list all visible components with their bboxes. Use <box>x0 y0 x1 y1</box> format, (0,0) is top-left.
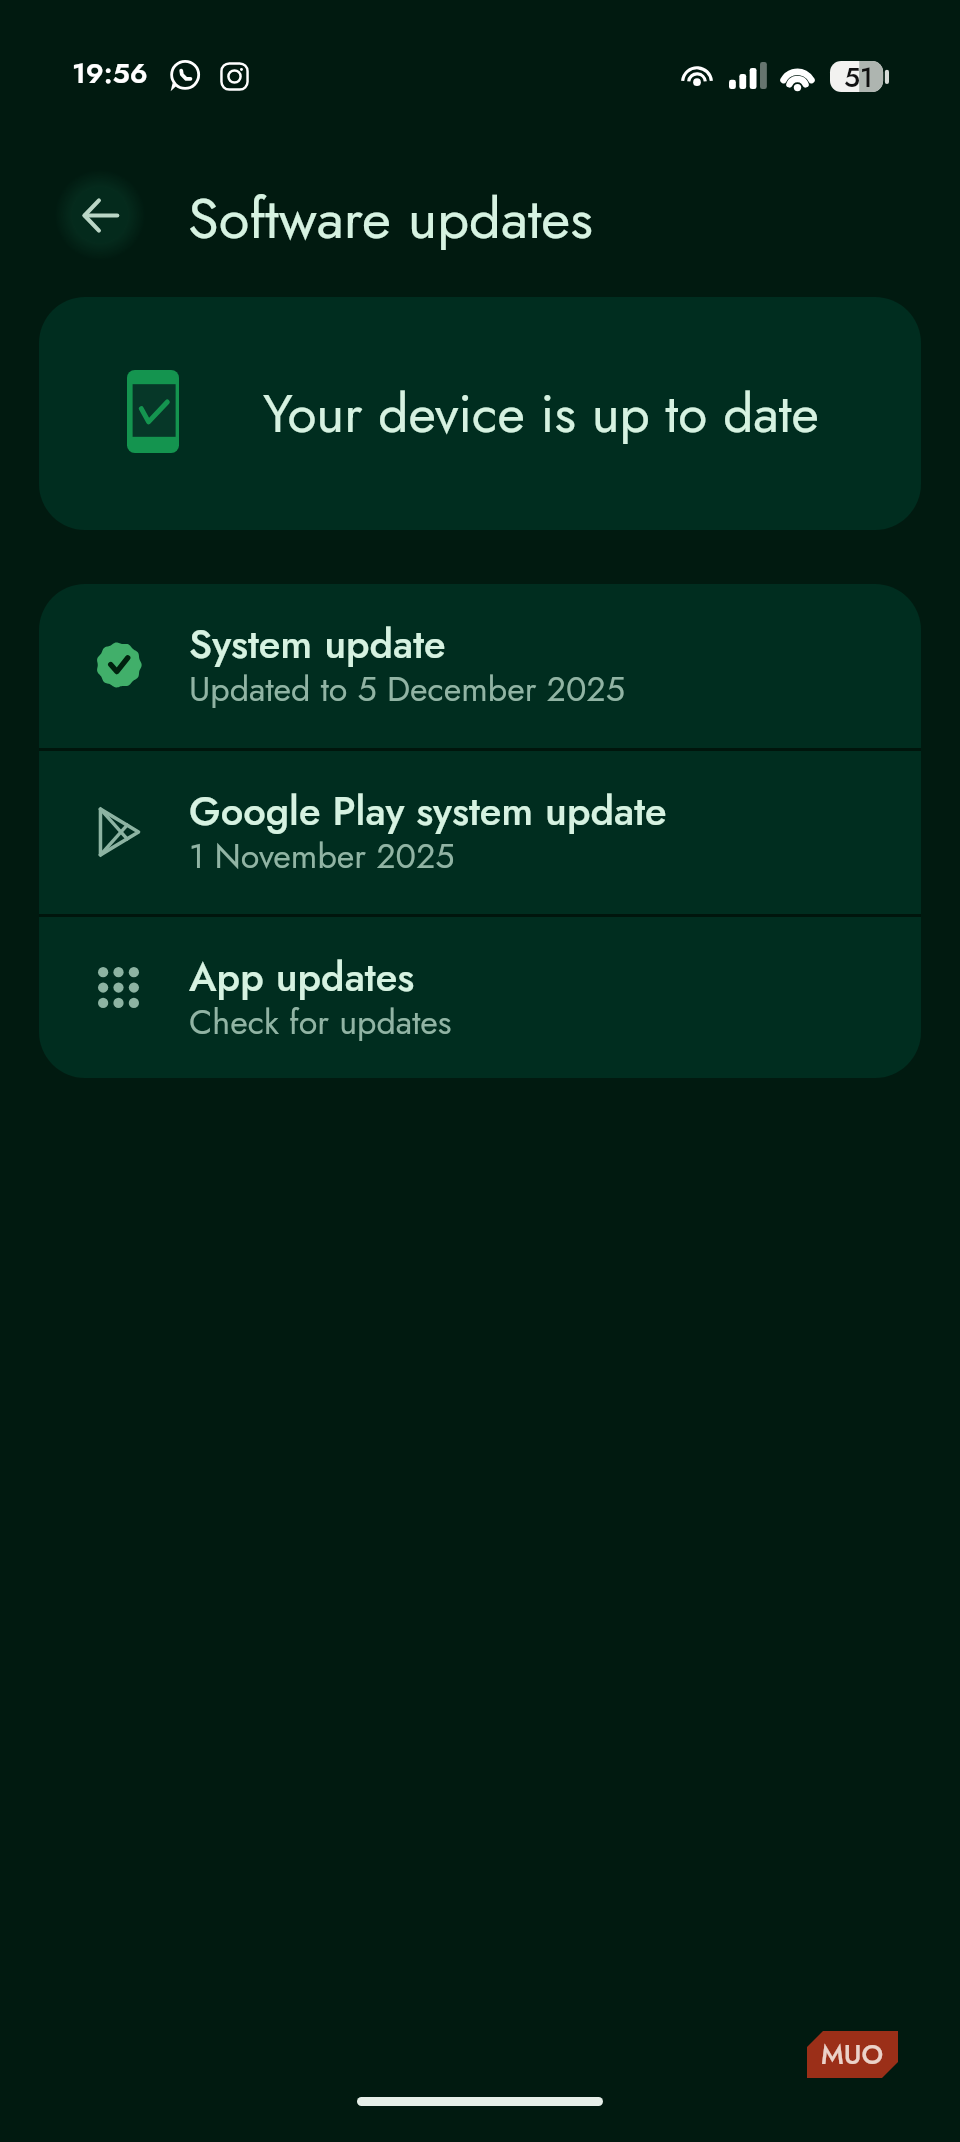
button[interactable]: App updates <box>39 917 921 1078</box>
staticText: 1 November 2025 <box>189 832 455 881</box>
staticText: Software updates <box>188 178 593 259</box>
staticText: Google Play system update <box>189 782 667 840</box>
button[interactable]: System update <box>39 584 921 749</box>
staticText: Updated to 5 December 2025 <box>189 665 625 714</box>
button[interactable]: Google Play system update <box>39 751 921 915</box>
button[interactable]: Your device is up to date <box>39 297 921 530</box>
staticText: MUO <box>821 2035 884 2074</box>
staticText: App updates <box>189 948 415 1006</box>
button[interactable]: Back <box>55 170 145 260</box>
staticText: Check for updates <box>189 998 452 1047</box>
staticText: Your device is up to date <box>263 375 819 452</box>
staticText: System update <box>189 615 446 673</box>
staticText: 19:56 <box>72 53 148 93</box>
staticText: 51 <box>844 58 873 89</box>
